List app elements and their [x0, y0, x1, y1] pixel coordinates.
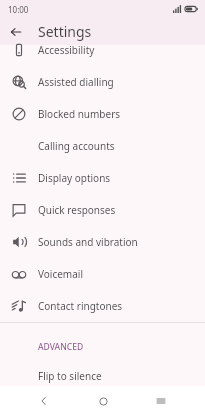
- button[interactable]: Sounds and vibration: [0, 226, 205, 258]
- staticText: Contact ringtones: [38, 299, 123, 313]
- button[interactable]: Home: [88, 386, 118, 416]
- staticText: Accessibility: [38, 43, 95, 57]
- button[interactable]: Accessibility: [0, 34, 205, 66]
- button[interactable]: Display options: [0, 162, 205, 194]
- staticText: Display options: [38, 171, 111, 185]
- button[interactable]: Quick responses: [0, 194, 205, 226]
- staticText: Assisted dialling: [38, 75, 114, 89]
- staticText: Blocked numbers: [38, 107, 121, 121]
- button[interactable]: Calling accounts: [0, 130, 205, 162]
- staticText: Calling accounts: [38, 139, 115, 153]
- staticText: Voicemail: [38, 267, 83, 281]
- button[interactable]: Assisted dialling: [0, 66, 205, 98]
- staticText: Quick responses: [38, 203, 116, 217]
- button[interactable]: Recent apps: [146, 386, 176, 416]
- button[interactable]: Blocked numbers: [0, 98, 205, 130]
- button[interactable]: Voicemail: [0, 258, 205, 290]
- staticText: 10:00: [8, 4, 29, 15]
- staticText: Flip to silence: [38, 369, 102, 383]
- button[interactable]: Contact ringtones: [0, 290, 205, 322]
- button[interactable]: Flip to silence: [0, 361, 205, 391]
- button[interactable]: Back: [29, 386, 59, 416]
- staticText: ADVANCED: [38, 341, 84, 353]
- button[interactable]: Back: [4, 20, 28, 44]
- staticText: Sounds and vibration: [38, 235, 138, 249]
- staticText: Settings: [38, 22, 92, 41]
